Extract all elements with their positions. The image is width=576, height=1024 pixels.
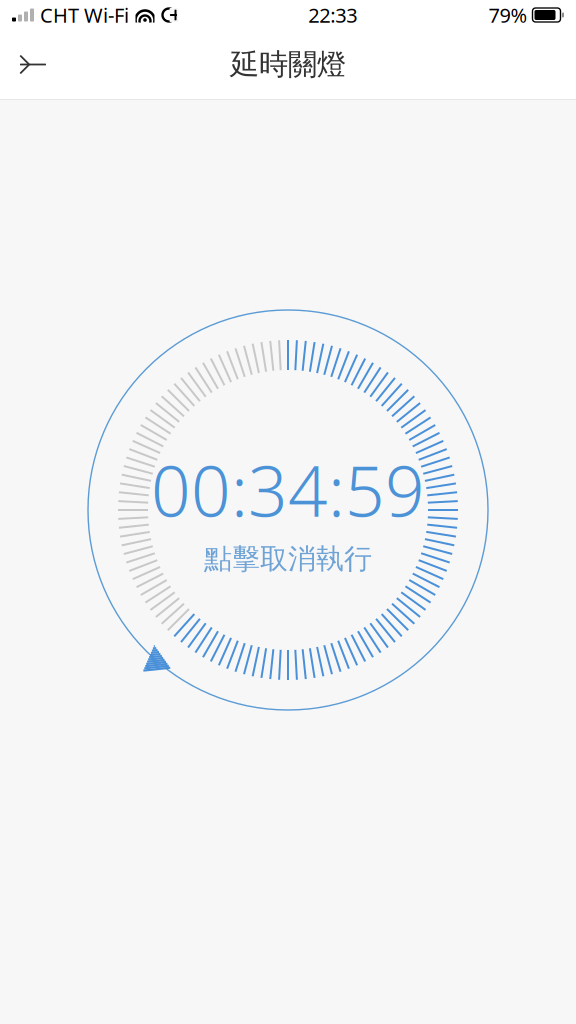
staticText: 點擊取消執行 xyxy=(204,542,372,576)
staticText: CHT Wi-Fi xyxy=(40,2,129,28)
button[interactable]: 點擊取消執行 xyxy=(88,310,488,710)
button[interactable]: Back xyxy=(0,38,66,90)
staticText: 延時關燈 xyxy=(230,46,346,82)
staticText: 22:33 xyxy=(308,2,357,28)
staticText: 79% xyxy=(488,2,527,28)
staticText: 00:34:59 xyxy=(151,444,425,536)
